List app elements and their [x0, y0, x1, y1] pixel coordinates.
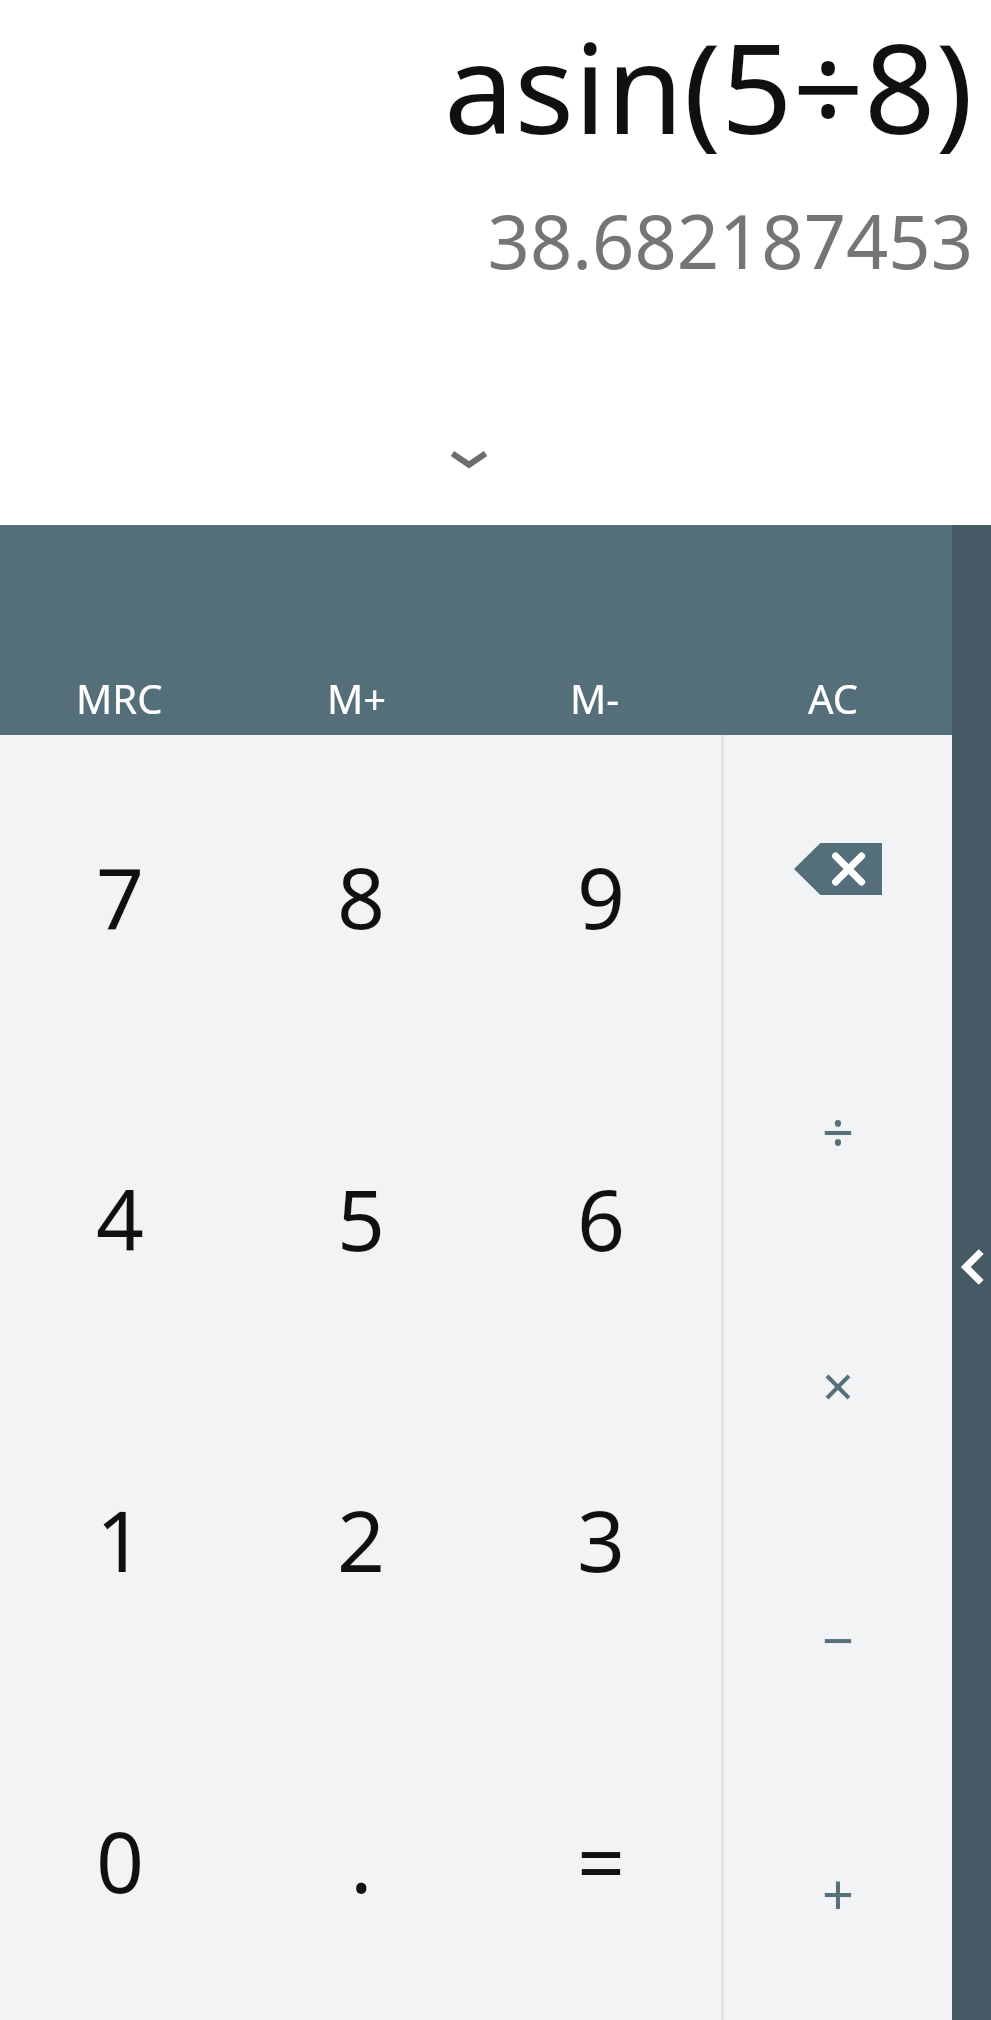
button[interactable]: 4: [0, 1057, 241, 1378]
button[interactable]: +: [724, 1766, 952, 2020]
button[interactable]: 7: [0, 735, 241, 1057]
button[interactable]: −: [724, 1512, 952, 1766]
button[interactable]: 1: [0, 1378, 241, 1699]
staticText: 6: [577, 1161, 626, 1275]
staticText: −: [822, 1601, 855, 1677]
staticText: 1: [96, 1482, 145, 1596]
staticText: 7: [96, 839, 145, 953]
button[interactable]: 38.682187453: [0, 170, 991, 310]
staticText: ÷: [822, 1093, 855, 1169]
button[interactable]: 0: [0, 1699, 241, 2020]
staticText: MRC: [76, 671, 163, 725]
button[interactable]: 3: [481, 1378, 721, 1699]
button[interactable]: .: [241, 1699, 481, 2020]
staticText: 2: [337, 1482, 386, 1596]
button[interactable]: AC: [714, 525, 952, 735]
button[interactable]: Open advanced pad: [952, 525, 991, 2020]
button[interactable]: Backspace: [724, 735, 952, 1003]
button[interactable]: 9: [481, 735, 721, 1057]
button[interactable]: 5: [241, 1057, 481, 1378]
staticText: +: [822, 1855, 855, 1931]
button[interactable]: 6: [481, 1057, 721, 1378]
staticText: 8: [337, 839, 386, 953]
button[interactable]: asin(5÷8): [0, 0, 991, 170]
button[interactable]: =: [481, 1699, 721, 2020]
staticText: 3: [577, 1482, 626, 1596]
button[interactable]: 2: [241, 1378, 481, 1699]
button[interactable]: ×: [724, 1258, 952, 1512]
staticText: 9: [577, 839, 626, 953]
staticText: 5: [337, 1161, 386, 1275]
button[interactable]: ÷: [724, 1003, 952, 1258]
staticText: M-: [570, 671, 620, 725]
button[interactable]: 8: [241, 735, 481, 1057]
staticText: M+: [327, 671, 387, 725]
staticText: 4: [96, 1161, 145, 1275]
staticText: 38.682187453: [487, 190, 973, 291]
staticText: ×: [822, 1347, 855, 1423]
staticText: asin(5÷8): [444, 0, 973, 170]
staticText: AC: [808, 671, 859, 725]
staticText: =: [577, 1803, 626, 1917]
staticText: 0: [96, 1803, 145, 1917]
button[interactable]: M-: [476, 525, 714, 735]
staticText: .: [350, 1803, 373, 1917]
button[interactable]: Expand history: [0, 445, 991, 525]
button[interactable]: M+: [238, 525, 476, 735]
button[interactable]: MRC: [0, 525, 238, 735]
